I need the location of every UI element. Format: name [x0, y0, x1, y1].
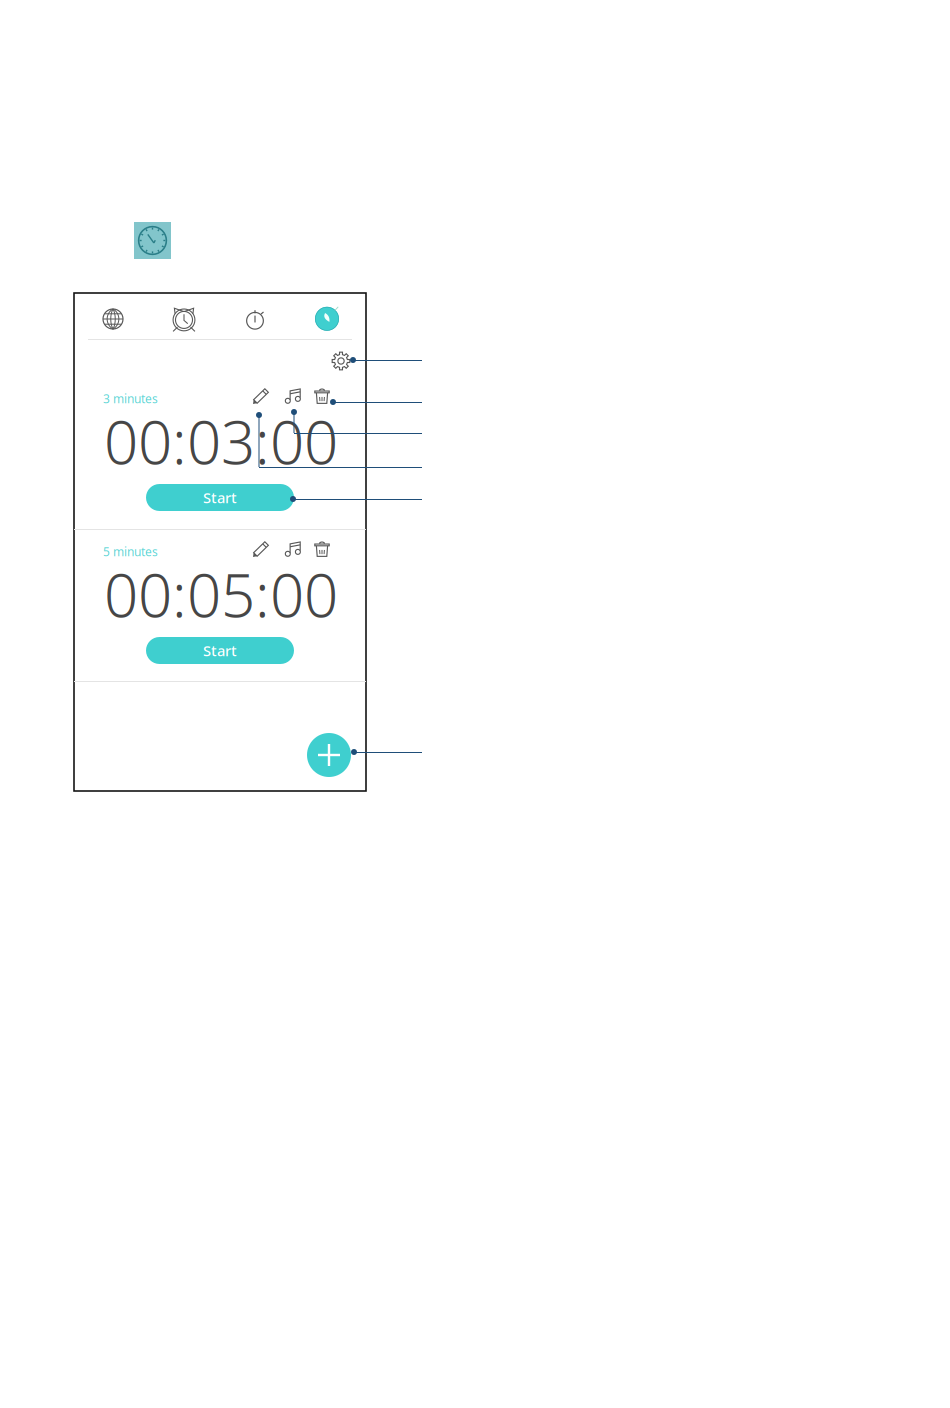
staticText: Start [203, 488, 237, 507]
button[interactable]: Delete timer [314, 541, 330, 557]
staticText: 00:03:00 [104, 401, 338, 481]
button[interactable]: World clock [102, 308, 124, 330]
button[interactable]: Alarm [172, 306, 196, 330]
button[interactable]: Delete timer [314, 388, 330, 404]
staticText: 5 minutes [103, 543, 158, 559]
staticText: 3 minutes [103, 390, 158, 406]
button[interactable]: Add timer [307, 733, 351, 777]
button[interactable]: Timer ringtone [285, 541, 301, 557]
button[interactable]: Start [146, 637, 294, 664]
button[interactable]: Timer ringtone [285, 388, 301, 404]
button[interactable]: Edit timer [253, 388, 269, 404]
button[interactable]: Stopwatch [244, 308, 266, 330]
button[interactable]: Timer settings [331, 351, 350, 370]
button[interactable]: Start [146, 484, 294, 511]
staticText: 00:05:00 [104, 554, 338, 634]
button[interactable]: Edit timer [253, 541, 269, 557]
staticText: Start [203, 641, 237, 660]
button[interactable]: Timer [314, 305, 340, 331]
